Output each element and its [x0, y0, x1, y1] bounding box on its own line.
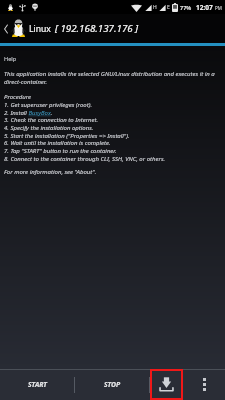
staticText: direct-container.	[4, 78, 48, 86]
button[interactable]: More options	[183, 369, 225, 400]
staticText: 3. Check the connection to Internet.	[4, 116, 99, 124]
button[interactable]: START	[0, 369, 74, 400]
staticText: Help	[4, 55, 17, 63]
staticText: Procedure	[4, 93, 31, 101]
staticText: This application installs the selected G…	[4, 70, 215, 78]
staticText: Linux	[29, 23, 51, 35]
staticText: 7. Tap "START" button to run the contain…	[4, 147, 117, 155]
staticText: STOP	[104, 380, 121, 389]
staticText: E	[167, 4, 170, 11]
staticText: 2. Install BusyBox.	[4, 109, 53, 117]
staticText: 1. Get superuser privileges (root).	[4, 101, 93, 109]
staticText: 6. Wait until the installation is comple…	[4, 139, 111, 147]
button[interactable]: STOP	[75, 369, 149, 400]
staticText: 4. Specify the installation options.	[4, 124, 94, 132]
staticText: 12:07	[196, 3, 213, 12]
button[interactable]: Install	[150, 369, 183, 400]
staticText: 5. Start the installation ("Properties =…	[4, 132, 130, 140]
staticText: H	[153, 4, 157, 11]
staticText: [ 192.168.137.176 ]	[55, 22, 139, 35]
staticText: 8. Connect to the container through CLI,…	[4, 155, 166, 163]
staticText: For more information, see "About".	[4, 168, 97, 176]
button[interactable]: Back	[1, 14, 10, 43]
staticText: 77%	[180, 4, 192, 11]
staticText: PM	[215, 5, 222, 11]
staticText: START	[28, 380, 47, 389]
